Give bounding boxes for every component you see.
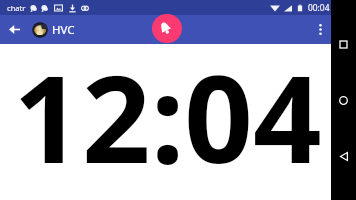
button[interactable]: More options [305,17,331,43]
staticText: HVC [52,22,75,38]
button[interactable]: Back [0,15,29,44]
button[interactable]: Home [331,88,356,113]
staticText: chatr [7,3,26,13]
staticText: 00:04 [308,2,330,13]
button[interactable]: Back [331,144,356,169]
button[interactable]: Recents [331,32,356,57]
staticText: 12:04 [13,35,322,191]
button[interactable]: Notifications [152,14,182,43]
